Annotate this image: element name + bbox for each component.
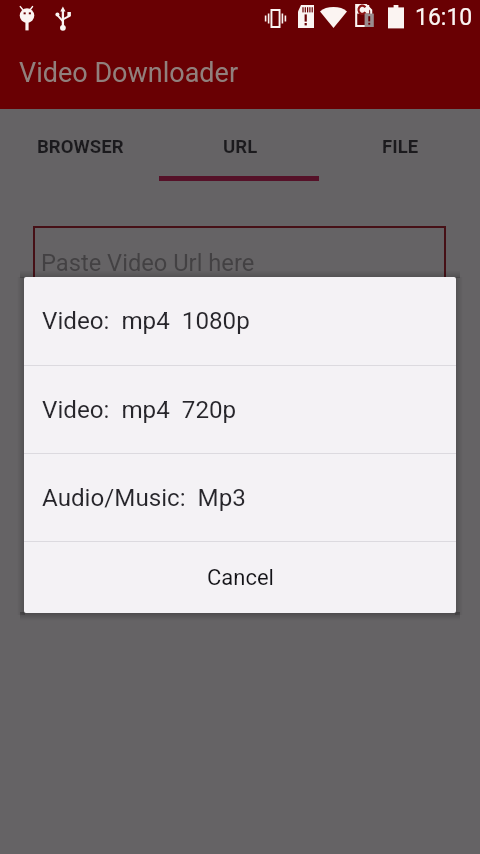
staticText: Cancel bbox=[207, 565, 274, 591]
button[interactable]: FILE bbox=[320, 109, 480, 180]
button[interactable]: URL bbox=[160, 109, 320, 180]
staticText: FILE bbox=[382, 136, 419, 158]
button[interactable]: Video: mp4 720p bbox=[24, 366, 456, 453]
staticText: Video: mp4 720p bbox=[42, 396, 237, 424]
staticText: BROWSER bbox=[37, 136, 124, 158]
button[interactable]: Video: mp4 1080p bbox=[24, 277, 456, 365]
button[interactable]: BROWSER bbox=[0, 109, 160, 180]
button[interactable]: Audio/Music: Mp3 bbox=[24, 454, 456, 541]
staticText: Paste Video Url here bbox=[41, 249, 255, 277]
button[interactable]: Cancel bbox=[24, 542, 456, 613]
staticText: Video: mp4 1080p bbox=[42, 307, 250, 335]
staticText: Video Downloader bbox=[19, 57, 239, 89]
staticText: Audio/Music: Mp3 bbox=[42, 484, 246, 512]
staticText: 16:10 bbox=[415, 4, 473, 31]
staticText: URL bbox=[223, 136, 258, 158]
